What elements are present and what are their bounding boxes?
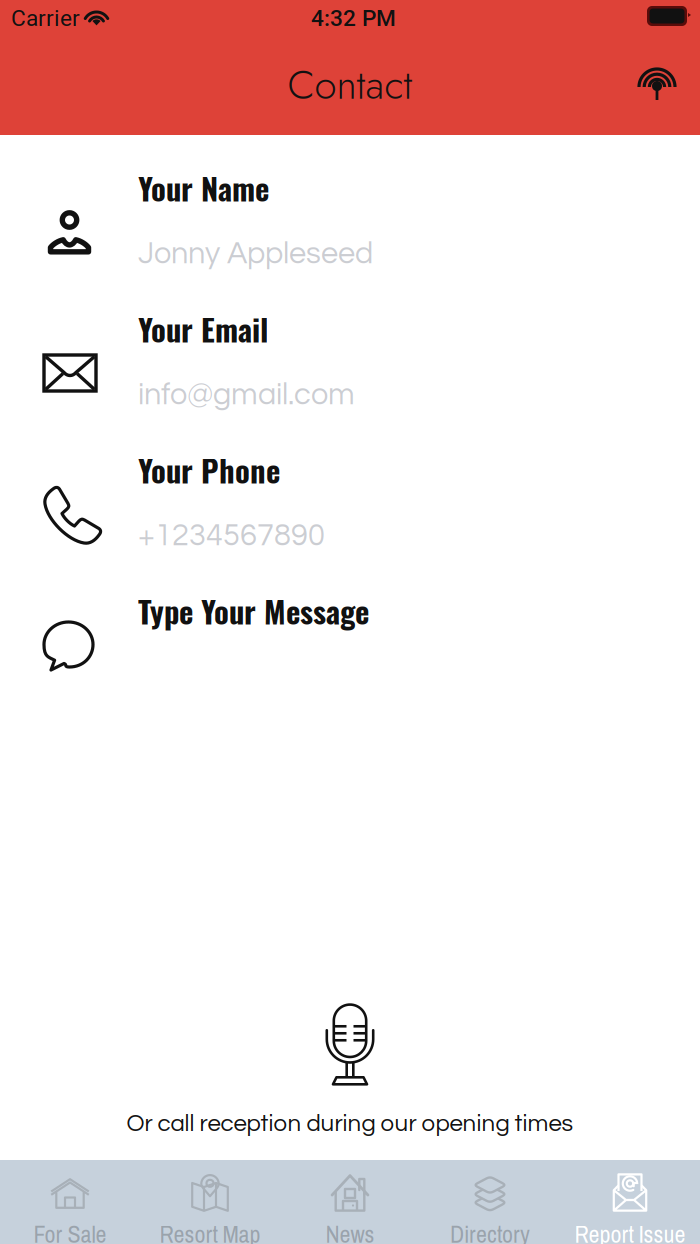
button[interactable]: Broadcast — [627, 51, 687, 107]
staticText: Jonny Appleseed — [138, 238, 373, 270]
staticText: Your Phone — [138, 447, 280, 492]
staticText: Resort Map — [159, 1218, 260, 1244]
button[interactable]: News — [280, 1160, 420, 1244]
staticText: Report Issue — [574, 1218, 685, 1244]
button[interactable]: Type Your Message — [0, 558, 700, 699]
staticText: 4:32 PM — [311, 5, 396, 32]
button[interactable]: For Sale — [0, 1160, 140, 1244]
staticText: info@gmail.com — [138, 379, 355, 411]
staticText: Or call reception during our opening tim… — [126, 1111, 573, 1136]
button[interactable]: Your Name — [0, 135, 700, 276]
staticText: +1234567890 — [138, 520, 325, 552]
button[interactable]: Your Phone — [0, 417, 700, 558]
button[interactable]: Resort Map — [140, 1160, 280, 1244]
button[interactable]: Directory — [420, 1160, 560, 1244]
button[interactable]: Your Email — [0, 276, 700, 417]
staticText: Carrier — [11, 5, 80, 32]
staticText: For Sale — [33, 1218, 106, 1244]
button[interactable]: Record a voice message — [325, 1003, 374, 1086]
staticText: Contact — [287, 56, 412, 114]
staticText: News — [325, 1218, 374, 1244]
button[interactable]: Report Issue — [560, 1160, 700, 1244]
staticText: Type Your Message — [138, 588, 369, 633]
staticText: Directory — [450, 1218, 530, 1244]
staticText: Your Name — [138, 165, 269, 210]
staticText: Your Email — [138, 306, 268, 351]
